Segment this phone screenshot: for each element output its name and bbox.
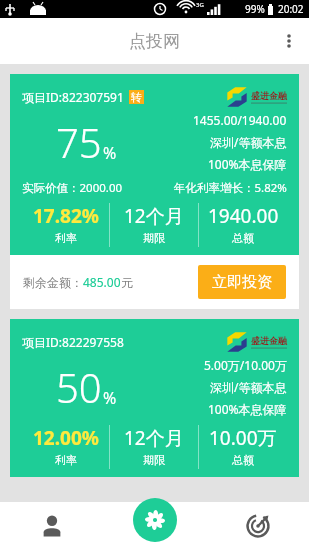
- staticText: 总额: [232, 453, 254, 467]
- staticText: 50: [56, 360, 102, 414]
- staticText: 项目ID:822297558: [22, 334, 124, 350]
- button[interactable]: Profile: [0, 502, 103, 550]
- button[interactable]: 项目ID:822297558: [10, 319, 299, 477]
- staticText: 深圳/等额本息: [210, 379, 287, 395]
- staticText: 实际价值：2000.00: [22, 180, 123, 196]
- staticText: 年化利率增长：5.82%: [174, 180, 287, 196]
- staticText: 期限: [143, 453, 165, 467]
- staticText: 100%本息保障: [208, 401, 287, 417]
- staticText: 12个月: [124, 425, 184, 451]
- button[interactable]: Target: [206, 502, 309, 550]
- staticText: 点投网: [129, 31, 180, 52]
- staticText: 期限: [143, 231, 165, 245]
- staticText: 剩余金额：: [23, 275, 83, 290]
- staticText: 12个月: [124, 203, 184, 229]
- staticText: 深圳/等额本息: [210, 134, 287, 150]
- staticText: 12.00%: [33, 425, 99, 451]
- staticText: 项目ID:822307591: [22, 89, 124, 105]
- staticText: %: [103, 142, 117, 164]
- staticText: 5.00万/10.00万: [204, 357, 287, 373]
- staticText: 利率: [55, 453, 77, 467]
- staticText: 立即投资: [212, 273, 272, 292]
- staticText: 75: [56, 115, 102, 169]
- staticText: 10.00万: [209, 425, 277, 451]
- staticText: 利率: [55, 231, 77, 245]
- staticText: 17.82%: [33, 203, 99, 229]
- staticText: 1455.00/1940.00: [193, 112, 287, 128]
- button[interactable]: 项目ID:822307591: [10, 74, 299, 309]
- staticText: 总额: [232, 231, 254, 245]
- staticText: 100%本息保障: [208, 156, 287, 172]
- button[interactable]: Invest: [103, 502, 206, 550]
- staticText: %: [103, 387, 117, 409]
- button[interactable]: More options: [269, 18, 309, 64]
- staticText: 盛进金融: [251, 335, 287, 346]
- staticText: 3G: [196, 1, 204, 9]
- staticText: 1940.00: [208, 203, 279, 229]
- staticText: 20:02: [278, 2, 304, 16]
- staticText: 转: [131, 90, 142, 104]
- staticText: 99%: [245, 2, 265, 16]
- button[interactable]: 立即投资: [198, 265, 286, 299]
- staticText: 485.00: [83, 274, 121, 290]
- staticText: 元: [121, 275, 133, 290]
- staticText: 盛进金融: [251, 90, 287, 101]
